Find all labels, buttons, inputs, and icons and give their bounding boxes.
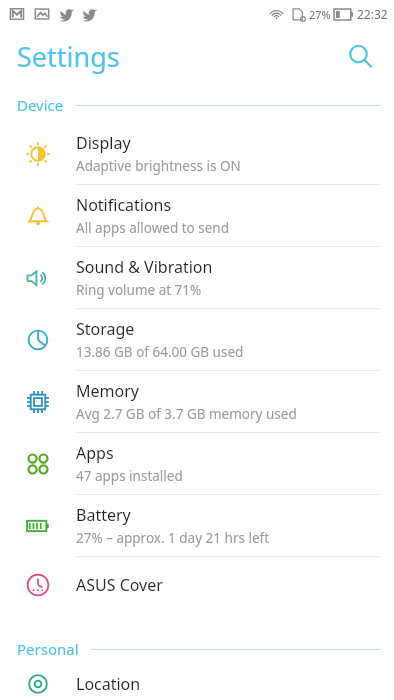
staticText: Location (76, 673, 141, 695)
staticText: Personal (17, 639, 79, 659)
staticText: Ring volume at 71% (76, 281, 202, 299)
staticText: 13.86 GB of 64.00 GB used (76, 343, 244, 361)
staticText: Sound & Vibration (76, 256, 213, 278)
button[interactable]: Search (337, 33, 383, 79)
staticText: Settings (17, 38, 120, 75)
button[interactable]: Apps (0, 433, 394, 494)
staticText: Storage (76, 318, 135, 340)
staticText: 47 apps installed (76, 467, 183, 485)
staticText: All apps allowed to send (76, 219, 230, 237)
staticText: Avg 2.7 GB of 3.7 GB memory used (76, 405, 297, 423)
staticText: Display (76, 132, 131, 154)
staticText: ASUS Cover (76, 574, 163, 596)
button[interactable]: Display (0, 123, 394, 184)
staticText: Battery (76, 504, 131, 526)
staticText: Memory (76, 380, 139, 402)
staticText: Apps (76, 442, 114, 464)
button[interactable]: Sound & Vibration (0, 247, 394, 308)
staticText: Adaptive brightness is ON (76, 157, 241, 175)
button[interactable]: Battery (0, 495, 394, 556)
staticText: 27% (309, 7, 331, 22)
staticText: Device (17, 95, 64, 115)
button[interactable]: Location (0, 667, 394, 700)
staticText: 22:32 (357, 6, 388, 22)
button[interactable]: Notifications (0, 185, 394, 246)
staticText: 27% – approx. 1 day 21 hrs left (76, 529, 270, 547)
button[interactable]: Memory (0, 371, 394, 432)
button[interactable]: Storage (0, 309, 394, 370)
staticText: Notifications (76, 194, 172, 216)
button[interactable]: ASUS Cover (0, 557, 394, 613)
